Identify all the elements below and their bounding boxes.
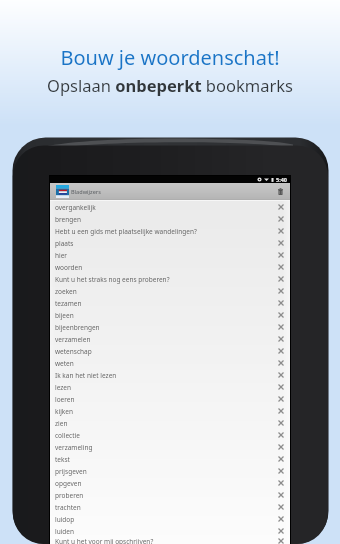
button[interactable]: tezamen [50, 297, 290, 309]
button[interactable]: zoeken [50, 285, 290, 297]
button[interactable]: woorden [50, 261, 290, 273]
staticText: collectie [55, 431, 278, 440]
staticText: Kunt u het voor mij opschrijven? [55, 537, 278, 544]
staticText: zoeken [55, 287, 278, 296]
staticText: wetenschap [55, 347, 278, 356]
button[interactable]: bijeenbrengen [50, 321, 290, 333]
button[interactable]: collectie [50, 429, 290, 441]
staticText: luidop [55, 515, 278, 524]
button[interactable]: overgankelijk [50, 201, 290, 213]
button[interactable]: Kunt u het straks nog eens proberen? [50, 273, 290, 285]
button[interactable]: opgeven [50, 477, 290, 489]
staticText: proberen [55, 491, 278, 500]
staticText: Hebt u een gids met plaatselijke wandeli… [55, 227, 278, 236]
staticText: opgeven [55, 479, 278, 488]
staticText: Opslaan onbeperkt bookmarks [0, 74, 340, 96]
button[interactable]: trachten [50, 501, 290, 513]
button[interactable]: weten [50, 357, 290, 369]
staticText: tekst [55, 455, 278, 464]
staticText: tezamen [55, 299, 278, 308]
button[interactable]: lezen [50, 381, 290, 393]
button[interactable]: Delete all bookmarks [270, 183, 290, 200]
button[interactable]: verzamelen [50, 333, 290, 345]
button[interactable]: hier [50, 249, 290, 261]
staticText: lezen [55, 383, 278, 392]
button[interactable]: plaats [50, 237, 290, 249]
staticText: Bouw je woordenschat! [0, 44, 340, 71]
staticText: bijeen [55, 311, 278, 320]
button[interactable]: verzameling [50, 441, 290, 453]
button[interactable]: zien [50, 417, 290, 429]
button[interactable]: Hebt u een gids met plaatselijke wandeli… [50, 225, 290, 237]
staticText: plaats [55, 239, 278, 248]
staticText: Bladwijzers [71, 188, 101, 195]
staticText: hier [55, 251, 278, 260]
button[interactable]: proberen [50, 489, 290, 501]
button[interactable]: luiden [50, 525, 290, 537]
staticText: prijsgeven [55, 467, 278, 476]
button[interactable]: luidop [50, 513, 290, 525]
button[interactable]: wetenschap [50, 345, 290, 357]
staticText: loeren [55, 395, 278, 404]
button[interactable]: prijsgeven [50, 465, 290, 477]
staticText: 5:40 [276, 176, 287, 183]
staticText: kijken [55, 407, 278, 416]
staticText: weten [55, 359, 278, 368]
staticText: trachten [55, 503, 278, 512]
button[interactable]: Ik kan het niet lezen [50, 369, 290, 381]
button[interactable]: Kunt u het voor mij opschrijven? [50, 537, 290, 544]
staticText: Kunt u het straks nog eens proberen? [55, 275, 278, 284]
staticText: woorden [55, 263, 278, 272]
staticText: brengen [55, 215, 278, 224]
staticText: zien [55, 419, 278, 428]
button[interactable]: kijken [50, 405, 290, 417]
button[interactable]: brengen [50, 213, 290, 225]
staticText: bijeenbrengen [55, 323, 278, 332]
button[interactable]: loeren [50, 393, 290, 405]
staticText: Ik kan het niet lezen [55, 371, 278, 380]
staticText: verzameling [55, 443, 278, 452]
button[interactable]: tekst [50, 453, 290, 465]
staticText: luiden [55, 527, 278, 536]
staticText: verzamelen [55, 335, 278, 344]
button[interactable]: bijeen [50, 309, 290, 321]
staticText: overgankelijk [55, 203, 278, 212]
